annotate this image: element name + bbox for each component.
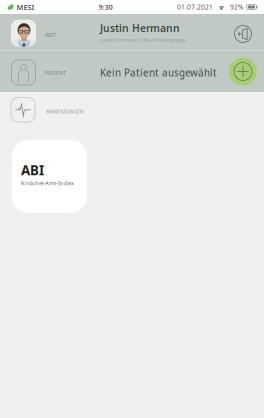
button[interactable]: Kein Patient ausgewählt [0, 51, 264, 92]
staticText: ARZT [45, 31, 57, 38]
staticText: Kein Patient ausgewählt [100, 66, 217, 79]
staticText: MESI [16, 2, 34, 12]
staticText: Justin Hermann's die Arbeitsgruppe [100, 36, 186, 44]
staticText: 01.07.2021 [177, 2, 213, 12]
staticText: Justin Hermann [100, 21, 180, 35]
staticText: ABI [21, 161, 44, 179]
staticText: 92% [230, 2, 244, 12]
staticText: ANWENDUNGEN [46, 108, 84, 115]
button[interactable]: Arzt Justin Hermann [0, 14, 264, 50]
staticText: PATIENT [45, 69, 66, 76]
staticText: Knöchel-Arm-Index [21, 179, 74, 187]
button[interactable]: ABI Knöchel-Arm-Index [12, 140, 87, 212]
staticText: 9:30 [99, 2, 113, 12]
